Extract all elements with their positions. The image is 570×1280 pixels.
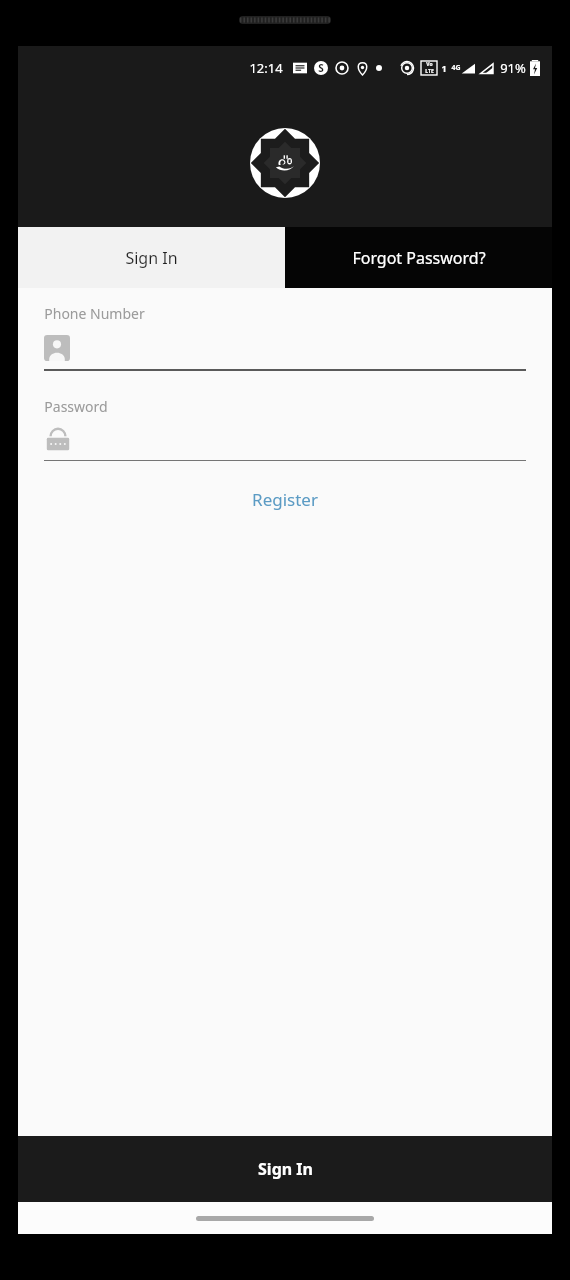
staticText: 4G bbox=[451, 63, 461, 73]
button[interactable]: Sign In bbox=[18, 227, 285, 288]
staticText: Forgot Password? bbox=[352, 247, 486, 269]
staticText: Sign In bbox=[258, 1158, 313, 1180]
staticText: Password bbox=[44, 397, 108, 416]
staticText: 12:14 bbox=[249, 59, 283, 77]
staticText: 91% bbox=[500, 59, 526, 77]
button[interactable]: Sign In bbox=[18, 1136, 552, 1202]
staticText: 1 bbox=[441, 62, 447, 74]
button[interactable] bbox=[44, 333, 526, 363]
staticText: LTE bbox=[425, 68, 434, 75]
staticText: Vo bbox=[426, 61, 433, 68]
button[interactable]: Forgot Password? bbox=[285, 227, 552, 288]
staticText: Sign In bbox=[125, 247, 178, 269]
staticText: Phone Number bbox=[44, 304, 145, 323]
button[interactable] bbox=[44, 424, 526, 456]
button[interactable]: Register bbox=[44, 479, 526, 519]
staticText: S bbox=[318, 61, 324, 75]
staticText: Register bbox=[252, 488, 318, 511]
